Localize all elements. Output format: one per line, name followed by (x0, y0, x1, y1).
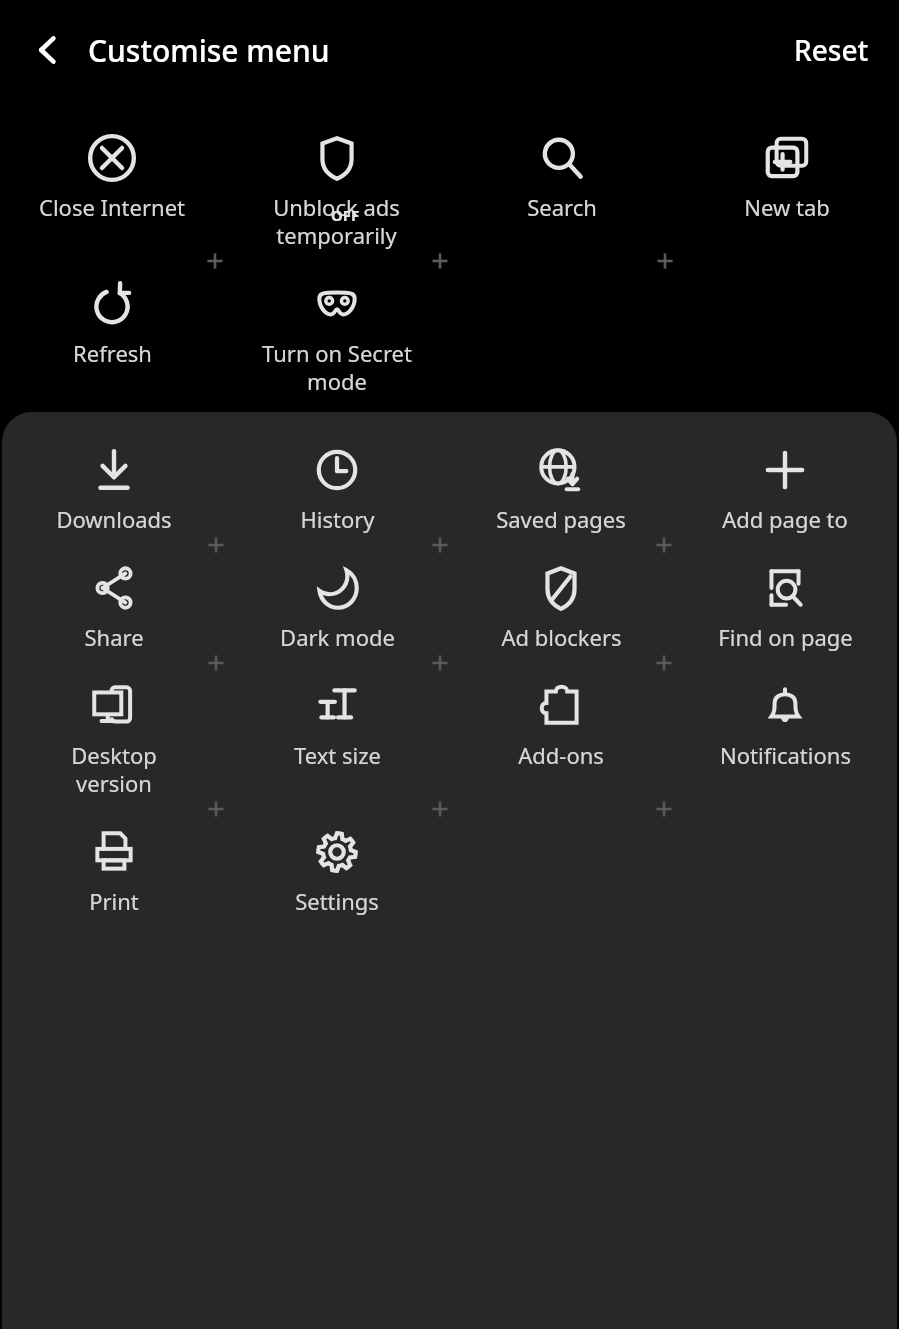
staticText: Reset (794, 31, 869, 69)
staticText: Customise menu (88, 30, 330, 71)
button[interactable]: Search (449, 130, 674, 222)
button[interactable]: Add-ons (449, 678, 673, 770)
button[interactable]: New tab (674, 130, 899, 222)
staticText: Share (84, 622, 144, 652)
staticText: Dark mode (280, 622, 395, 652)
button[interactable]: Unblock ads temporarily (224, 130, 449, 250)
button[interactable]: Ad blockers (449, 560, 673, 652)
button[interactable]: Close Internet (0, 130, 224, 222)
staticText: Turn on Secret mode (262, 338, 412, 396)
button[interactable]: Refresh (0, 276, 224, 368)
button[interactable]: Turn on Secret mode (224, 276, 449, 396)
button[interactable]: Print (2, 824, 225, 916)
staticText: Notifications (720, 740, 851, 770)
staticText: Settings (295, 886, 379, 916)
button[interactable]: Downloads (2, 442, 225, 534)
button[interactable]: Dark mode (225, 560, 449, 652)
staticText: Search (527, 192, 597, 222)
button[interactable]: Back (22, 24, 74, 76)
staticText: Ad blockers (501, 622, 622, 652)
staticText: OFF (331, 205, 360, 225)
staticText: Downloads (56, 504, 172, 534)
staticText: New tab (744, 192, 830, 222)
staticText: Refresh (73, 338, 152, 368)
staticText: Saved pages (496, 504, 626, 534)
staticText: Add-ons (518, 740, 604, 770)
button[interactable]: Settings (225, 824, 449, 916)
staticText: Close Internet (39, 192, 185, 222)
staticText: Unblock ads temporarily (273, 192, 400, 250)
button[interactable]: Find on page (673, 560, 897, 652)
staticText: Desktop version (71, 740, 157, 798)
button[interactable]: History (225, 442, 449, 534)
staticText: Print (89, 886, 139, 916)
button[interactable]: Share (2, 560, 225, 652)
staticText: Text size (294, 740, 381, 770)
button[interactable]: Add page to (673, 442, 897, 534)
staticText: Find on page (718, 622, 853, 652)
button[interactable]: Reset (786, 23, 877, 77)
button[interactable]: Desktop version (2, 678, 225, 798)
button[interactable]: Saved pages (449, 442, 673, 534)
staticText: Add page to (722, 504, 848, 534)
button[interactable]: Text size (225, 678, 449, 770)
staticText: History (300, 504, 375, 534)
button[interactable]: Notifications (673, 678, 897, 770)
